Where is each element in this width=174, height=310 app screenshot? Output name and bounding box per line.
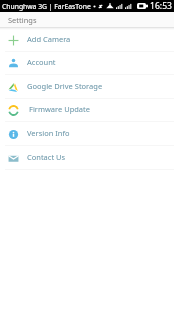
button[interactable]: Contact Us xyxy=(0,146,174,170)
staticText: Account xyxy=(27,57,56,67)
button[interactable]: Firmware Update xyxy=(0,98,174,122)
button[interactable]: Google Drive Storage xyxy=(0,75,174,99)
other: Mobile signal xyxy=(125,3,132,9)
staticText: 16:53 xyxy=(150,0,172,12)
staticText: Google Drive Storage xyxy=(27,81,103,91)
staticText: Settings xyxy=(8,15,37,25)
staticText: Firmware Update xyxy=(29,104,91,114)
button[interactable]: Account xyxy=(0,51,174,75)
button[interactable]: Version Info xyxy=(0,122,174,146)
staticText: Add Camera xyxy=(27,34,71,44)
staticText: Contact Us xyxy=(27,152,66,162)
staticText: Version Info xyxy=(27,128,70,138)
staticText: Chunghwa 3G | FarEasTone xyxy=(2,2,91,11)
other: Battery xyxy=(137,3,148,9)
other: Wi-Fi signal xyxy=(106,2,114,10)
other: Silent mode xyxy=(97,3,104,10)
button[interactable]: Add Camera xyxy=(0,28,174,52)
other: Mobile signal xyxy=(116,3,123,9)
